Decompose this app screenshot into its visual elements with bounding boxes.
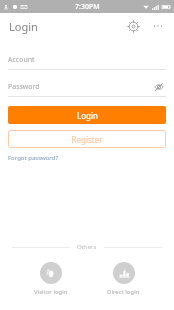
staticText: Login [9,19,38,34]
staticText: Register [71,134,103,145]
button[interactable]: Show password [152,80,166,93]
button[interactable]: Forgot password? [8,153,59,163]
staticText: 7:30PM [75,2,100,12]
button[interactable]: Visitor login [28,260,74,298]
button[interactable]: Login [8,106,166,124]
staticText: Login [77,110,98,121]
staticText: Direct login [107,288,140,296]
button[interactable]: Settings [124,17,142,35]
button[interactable]: More options [149,17,167,35]
staticText: Visitor login [34,288,68,296]
staticText: Others [77,243,97,251]
staticText: Password [8,82,40,92]
staticText: Account [8,55,35,65]
button[interactable]: Register [8,130,166,148]
button[interactable]: Direct login [101,260,146,298]
staticText: Forgot password? [8,154,59,162]
